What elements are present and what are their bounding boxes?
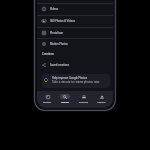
button[interactable]: Library xyxy=(92,91,110,108)
staticText: Saved creations xyxy=(50,63,70,67)
staticText: Help improve Google Photos xyxy=(52,76,87,80)
button[interactable]: Photos xyxy=(38,91,56,108)
staticText: Motion Photos xyxy=(50,42,68,46)
button[interactable]: 360 Photos & Videos xyxy=(37,15,113,27)
staticText: Sharing xyxy=(79,101,88,104)
other: Sharing xyxy=(82,95,86,99)
button[interactable]: Motion Photos xyxy=(37,38,113,50)
staticText: 360 Photos & Videos xyxy=(50,19,75,23)
button[interactable]: Saved creations xyxy=(37,59,113,71)
staticText: Search xyxy=(61,101,69,104)
other: Library xyxy=(100,95,104,99)
button[interactable]: PhotoScan xyxy=(37,27,113,39)
button[interactable]: Sharing xyxy=(74,91,92,108)
button[interactable]: Videos xyxy=(37,3,113,15)
staticText: Library xyxy=(97,101,106,104)
staticText: Creations xyxy=(42,52,54,56)
button[interactable]: Search xyxy=(56,91,74,108)
staticText: Photos xyxy=(43,101,51,104)
staticText: Take a minute to review photos now xyxy=(52,80,100,84)
other: Search xyxy=(63,95,67,99)
staticText: PhotoScan xyxy=(50,31,63,35)
staticText: Videos xyxy=(50,7,59,11)
button[interactable]: Help improve Google Photos xyxy=(42,74,110,88)
other: Photos xyxy=(46,95,50,99)
